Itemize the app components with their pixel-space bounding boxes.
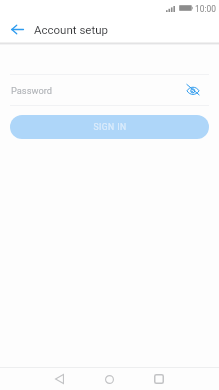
button[interactable]: Recent apps <box>134 368 184 390</box>
button[interactable]: Password <box>0 75 219 105</box>
button[interactable]: Home <box>84 368 134 390</box>
button[interactable]: Back <box>35 368 84 390</box>
staticText: Account setup <box>34 23 108 36</box>
staticText: Password <box>11 85 179 96</box>
button[interactable]: Show password <box>179 77 205 103</box>
staticText: 10:00 <box>195 4 216 14</box>
staticText: SIGN IN <box>93 122 127 132</box>
button[interactable]: SIGN IN <box>10 115 209 139</box>
button[interactable]: Back <box>0 17 34 42</box>
